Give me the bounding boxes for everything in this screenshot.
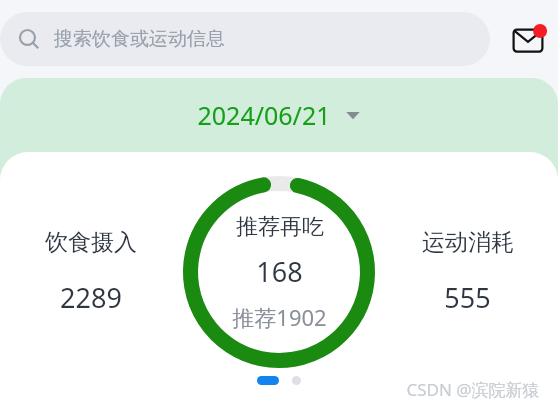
staticText: CSDN @滨院新猿: [406, 378, 540, 401]
staticText: 饮食摄入: [45, 228, 137, 257]
staticText: 推荐再吃: [236, 213, 324, 241]
button[interactable]: 推荐再吃: [181, 174, 377, 370]
button[interactable]: 搜索饮食或运动信息: [0, 12, 490, 66]
staticText: 2024/06/21: [197, 98, 331, 132]
staticText: 2289: [60, 279, 122, 316]
button[interactable]: 饮食摄入: [0, 220, 181, 324]
staticText: 168: [256, 253, 303, 290]
button[interactable]: [251, 370, 307, 391]
button[interactable]: 运动消耗: [377, 220, 558, 324]
staticText: 运动消耗: [422, 228, 514, 257]
button[interactable]: Messages: [504, 15, 552, 63]
staticText: 推荐1902: [232, 302, 327, 332]
staticText: 搜索饮食或运动信息: [54, 27, 225, 51]
staticText: 555: [444, 279, 491, 316]
button[interactable]: 2024/06/21: [189, 94, 369, 136]
